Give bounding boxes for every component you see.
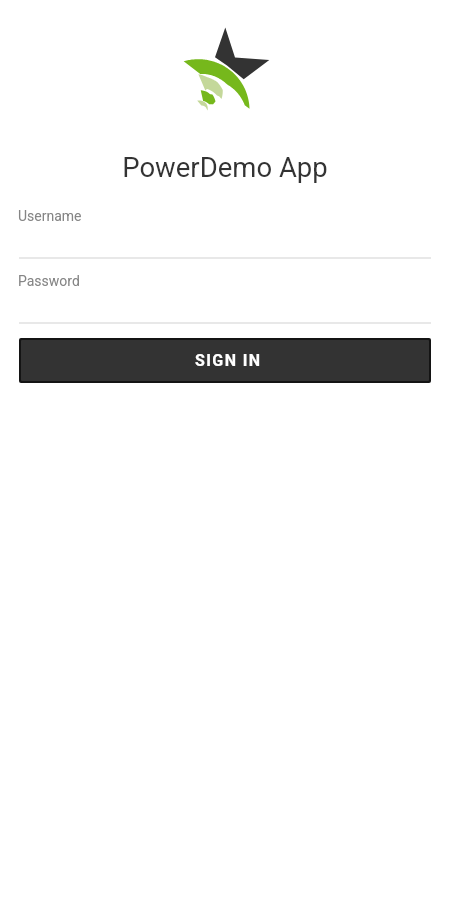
staticText: PowerDemo App [0,151,450,183]
staticText: Username [18,208,82,224]
button[interactable]: SIGN IN [21,340,429,381]
staticText: SIGN IN [195,351,262,370]
staticText: Password [18,273,80,289]
